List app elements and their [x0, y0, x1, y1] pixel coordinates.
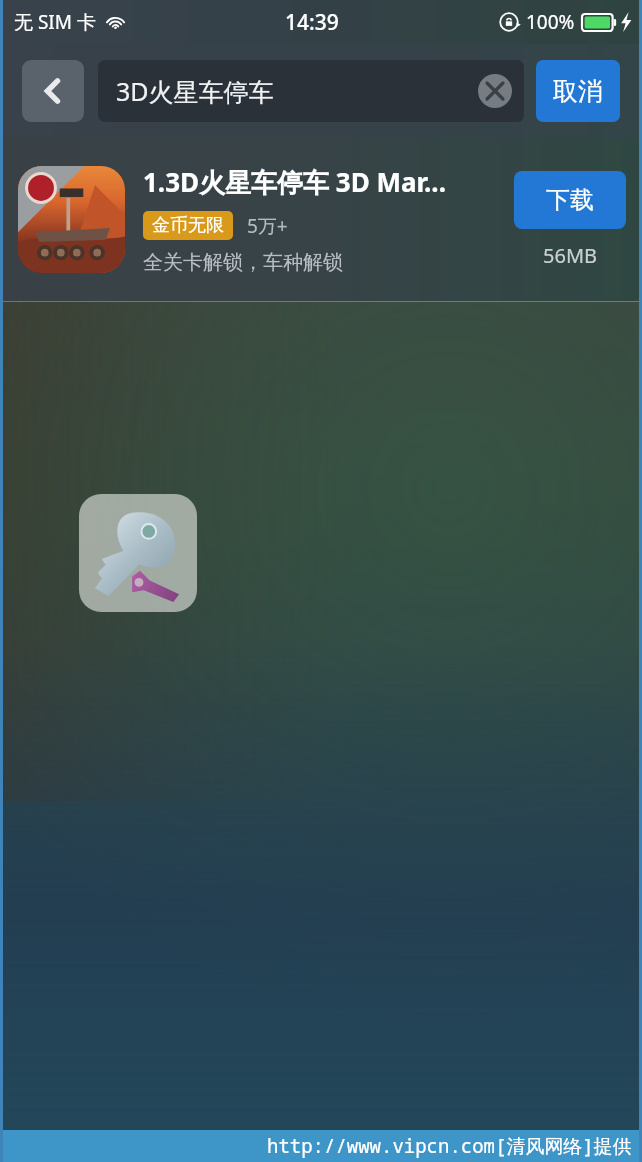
- staticText: 取消: [553, 76, 603, 107]
- staticText: 5万+: [247, 213, 288, 239]
- button[interactable]: 取消: [536, 60, 620, 122]
- button[interactable]: Key tool app: [79, 494, 197, 612]
- staticText: 56MB: [543, 242, 598, 269]
- staticText: 下载: [546, 185, 594, 215]
- button[interactable]: Clear text: [478, 74, 512, 108]
- staticText: 无 SIM 卡: [14, 9, 96, 35]
- button[interactable]: 3D火星车停车: [98, 60, 524, 122]
- button[interactable]: 下载: [514, 171, 626, 229]
- staticText: 100%: [526, 9, 575, 35]
- button[interactable]: 1.3D火星车停车 3D Mar...: [0, 138, 642, 301]
- staticText: 3D火星车停车: [116, 74, 274, 108]
- staticText: http://www.vipcn.com[清风网络]提供: [267, 1133, 632, 1159]
- staticText: 1.3D火星车停车 3D Mar...: [143, 164, 446, 200]
- button[interactable]: Back: [22, 60, 84, 122]
- staticText: 全关卡解锁，车种解锁: [143, 250, 343, 275]
- staticText: 14:39: [285, 8, 339, 37]
- staticText: 金币无限: [152, 214, 224, 237]
